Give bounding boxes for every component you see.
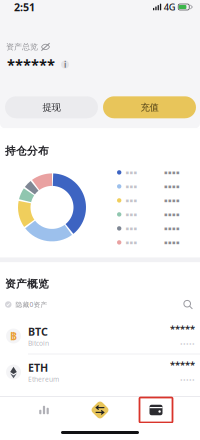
staticText: ▪▪▪▪	[164, 211, 180, 217]
button[interactable]: Exchange	[72, 397, 128, 423]
staticText: *****	[170, 359, 195, 371]
staticText: ▪▪▪▪	[164, 183, 180, 189]
staticText: ▪▪▪	[125, 183, 137, 189]
staticText: ▪▪▪	[125, 225, 137, 231]
staticText: ·····	[180, 337, 195, 349]
button[interactable]: 提现	[5, 96, 98, 118]
staticText: ▪▪▪▪	[164, 197, 180, 203]
button[interactable]: ETH	[0, 354, 200, 389]
staticText: 隐藏0资产	[15, 300, 47, 309]
staticText: ETH	[28, 360, 48, 375]
staticText: Bitcoin	[28, 339, 49, 348]
staticText: B	[10, 329, 17, 343]
staticText: ▪▪▪	[125, 169, 137, 175]
staticText: 4G	[164, 1, 176, 13]
staticText: ▪▪▪	[125, 239, 137, 245]
staticText: 充值	[140, 102, 158, 113]
button[interactable]: B	[0, 318, 200, 353]
staticText: ▪▪▪	[125, 197, 137, 203]
staticText: ▪▪▪▪	[164, 225, 180, 231]
staticText: 持仓分布	[5, 144, 49, 157]
staticText: ▪▪▪	[125, 211, 137, 217]
button[interactable]: Markets	[16, 397, 72, 423]
staticText: 2:51	[14, 0, 35, 14]
staticText: ▪▪▪▪	[164, 239, 180, 245]
staticText: i	[64, 59, 66, 70]
staticText: ******	[7, 55, 55, 74]
button[interactable]: Wallet	[128, 397, 184, 423]
button[interactable]: 隐藏0资产	[0, 300, 47, 309]
button[interactable]: Search	[183, 299, 200, 309]
staticText: 资产总览	[6, 42, 38, 52]
staticText: Ethereum	[28, 375, 59, 384]
button[interactable]: 充值	[103, 96, 196, 118]
staticText: *****	[170, 323, 195, 335]
staticText: BTC	[28, 324, 48, 339]
staticText: 资产概览	[5, 277, 49, 290]
staticText: ▪▪▪▪	[164, 169, 180, 175]
staticText: 提现	[42, 102, 60, 113]
staticText: ·····	[180, 373, 195, 385]
